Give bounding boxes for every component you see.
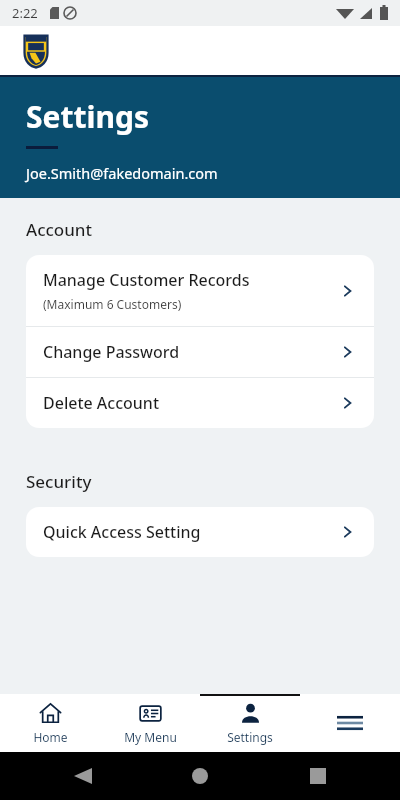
button[interactable]: Manage Customer Records xyxy=(26,255,374,326)
staticText: Quick Access Setting xyxy=(43,521,201,543)
staticText: Change Password xyxy=(43,341,180,363)
button[interactable]: Open navigation drawer xyxy=(300,694,400,752)
button[interactable]: Delete Account xyxy=(26,378,374,428)
staticText: Home xyxy=(33,729,68,745)
staticText: (Maximum 6 Customers) xyxy=(43,296,182,312)
button[interactable]: Settings xyxy=(200,694,300,752)
staticText: Delete Account xyxy=(43,392,160,414)
staticText: Joe.Smith@fakedomain.com xyxy=(26,163,218,183)
staticText: My Menu xyxy=(124,729,177,745)
button[interactable]: Quick Access Setting xyxy=(26,507,374,557)
button[interactable]: Home xyxy=(0,694,100,752)
button[interactable]: Change Password xyxy=(26,327,374,377)
button[interactable]: My Menu xyxy=(100,694,200,752)
staticText: Security xyxy=(26,470,92,493)
staticText: Settings xyxy=(227,729,273,745)
staticText: Manage Customer Records xyxy=(43,269,250,291)
staticText: Account xyxy=(26,218,93,241)
staticText: 2:22 xyxy=(12,4,38,22)
staticText: Settings xyxy=(26,96,149,137)
